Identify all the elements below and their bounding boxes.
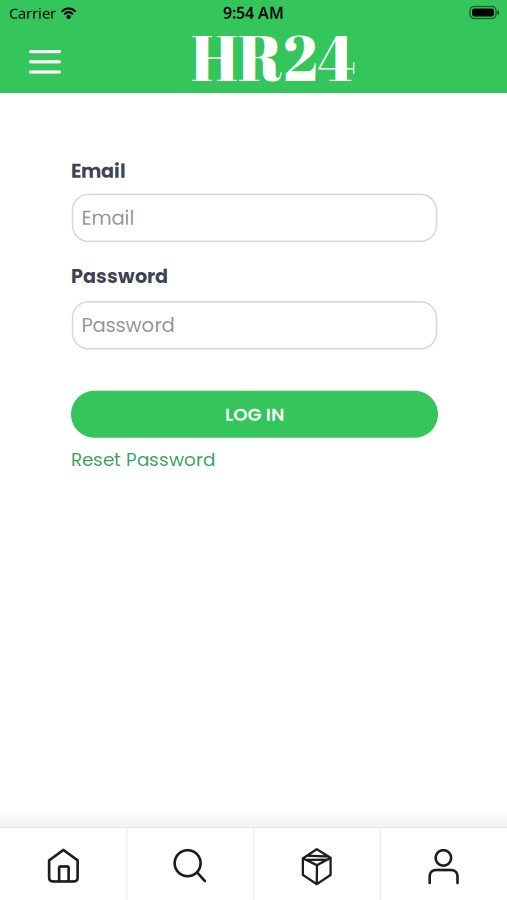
button[interactable]: Profile xyxy=(380,828,507,900)
button[interactable]: Menu xyxy=(21,40,69,84)
button[interactable]: Email xyxy=(72,194,436,241)
button[interactable]: LOG IN xyxy=(71,391,438,438)
staticText: Email xyxy=(71,157,126,184)
button[interactable]: Home xyxy=(0,828,127,900)
button[interactable]: Orders xyxy=(253,828,380,900)
staticText: Password xyxy=(81,311,174,339)
staticText: LOG IN xyxy=(225,401,284,427)
staticText: Email xyxy=(81,204,134,232)
staticText: 9:54 AM xyxy=(223,2,284,23)
button[interactable]: Reset Password xyxy=(71,447,215,473)
button[interactable]: Password xyxy=(72,302,436,349)
staticText: Reset Password xyxy=(71,447,215,473)
staticText: HR24 xyxy=(191,15,356,99)
staticText: Password xyxy=(71,263,168,290)
staticText: Carrier xyxy=(9,3,56,23)
button[interactable]: Search xyxy=(127,828,254,900)
